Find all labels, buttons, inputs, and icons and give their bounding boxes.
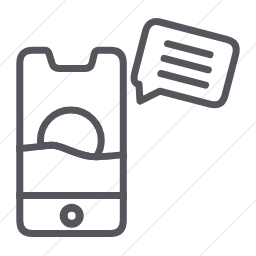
- button[interactable]: Phone with message bubble illustration: [0, 0, 256, 256]
